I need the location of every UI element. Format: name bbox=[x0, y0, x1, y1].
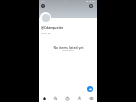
staticText: Paris, FR bbox=[41, 31, 51, 34]
staticText: 9:41 bbox=[41, 0, 46, 3]
button[interactable]: Profile bbox=[85, 91, 97, 102]
staticText: @Cdanquette bbox=[41, 25, 64, 29]
button[interactable]: Saved bbox=[73, 91, 85, 102]
button[interactable]: Chat bbox=[87, 86, 93, 92]
button[interactable]: More options bbox=[89, 4, 93, 8]
button[interactable]: Sell bbox=[61, 91, 73, 102]
staticText: .... bbox=[65, 0, 68, 3]
staticText: Check back bbox=[62, 49, 74, 52]
button[interactable]: Back bbox=[41, 4, 45, 8]
button[interactable]: Search bbox=[50, 91, 61, 102]
staticText: No items listed yet bbox=[53, 45, 84, 49]
button[interactable]: Home bbox=[39, 91, 50, 102]
